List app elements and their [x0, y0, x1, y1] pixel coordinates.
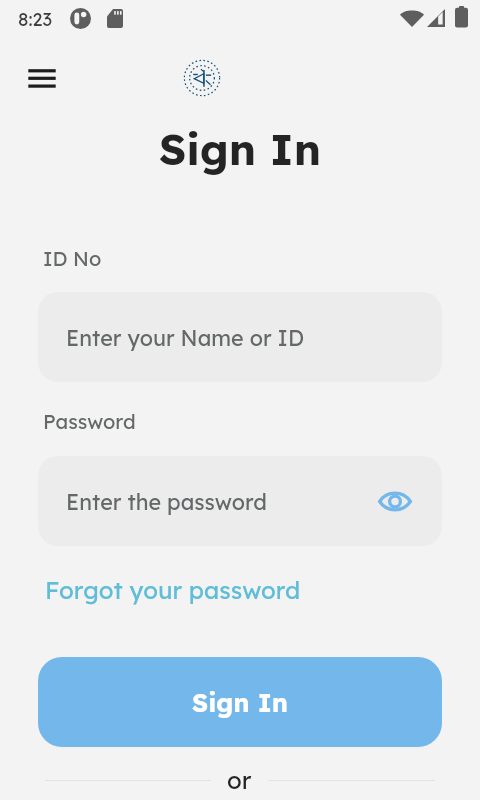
- staticText: Sign In: [192, 686, 289, 718]
- staticText: Enter your Name or ID: [66, 324, 304, 351]
- staticText: Enter the password: [66, 488, 267, 515]
- staticText: Forgot your password: [45, 575, 301, 605]
- staticText: Password: [43, 409, 136, 434]
- button[interactable]: Show password: [378, 490, 412, 513]
- staticText: Sign In: [0, 122, 480, 176]
- staticText: 8:23: [18, 8, 52, 31]
- button[interactable]: Sign In: [38, 657, 442, 747]
- button[interactable]: Forgot your password: [45, 575, 301, 605]
- button[interactable]: Open navigation menu: [22, 62, 62, 102]
- button[interactable]: Enter your Name or ID: [38, 292, 442, 382]
- staticText: ID No: [43, 246, 102, 271]
- button[interactable]: Enter the password: [38, 456, 442, 546]
- staticText: or: [227, 765, 252, 795]
